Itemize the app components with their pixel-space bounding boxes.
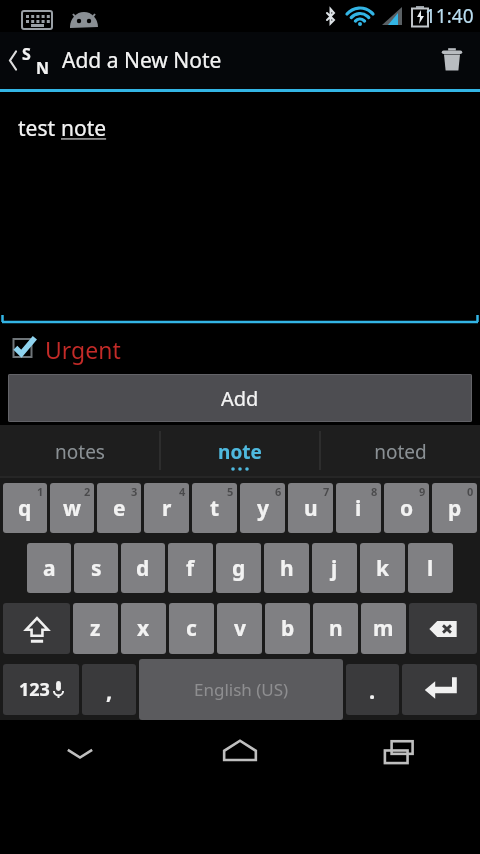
button[interactable]: s — [74, 543, 118, 593]
staticText: , — [106, 675, 113, 705]
staticText: x — [137, 614, 150, 643]
button[interactable]: y — [240, 483, 285, 533]
staticText: note — [218, 439, 262, 465]
staticText: h — [280, 554, 294, 583]
button[interactable]: a — [27, 543, 71, 593]
staticText: t — [210, 494, 220, 523]
staticText: 7 — [323, 484, 330, 499]
staticText: u — [304, 494, 318, 523]
button[interactable]: S — [0, 32, 480, 89]
staticText: 11:40 — [425, 3, 474, 29]
button[interactable]: Urgent — [0, 327, 480, 371]
button[interactable]: i — [336, 483, 381, 533]
button[interactable]: v — [217, 603, 262, 654]
button[interactable]: n — [313, 603, 358, 654]
staticText: Add a New Note — [62, 46, 222, 75]
button[interactable]: j — [312, 543, 357, 593]
button[interactable]: h — [264, 543, 309, 593]
button[interactable]: Home — [160, 720, 320, 786]
button[interactable]: . — [346, 664, 399, 715]
staticText: N — [36, 57, 50, 79]
staticText: v — [234, 614, 246, 643]
staticText: q — [18, 494, 32, 523]
button[interactable]: g — [216, 543, 261, 593]
button[interactable]: Enter — [402, 664, 477, 715]
button[interactable]: l — [408, 543, 453, 593]
staticText: r — [162, 494, 172, 523]
button[interactable]: o — [384, 483, 429, 533]
staticText: i — [355, 494, 362, 523]
staticText: S — [22, 43, 31, 65]
staticText: w — [63, 494, 81, 523]
button[interactable]: b — [265, 603, 310, 654]
staticText: l — [427, 554, 434, 583]
staticText: m — [373, 614, 394, 643]
button[interactable]: test — [0, 92, 480, 327]
staticText: 123 — [19, 677, 50, 702]
button[interactable]: notes — [0, 425, 160, 478]
staticText: noted — [374, 439, 427, 465]
staticText: e — [113, 494, 126, 523]
button[interactable]: q — [3, 483, 47, 533]
button[interactable]: k — [360, 543, 405, 593]
button[interactable]: note — [160, 425, 320, 478]
staticText: o — [400, 494, 414, 523]
button[interactable]: z — [73, 603, 118, 654]
button[interactable]: English (US) — [139, 659, 343, 720]
button[interactable]: d — [121, 543, 165, 593]
staticText: b — [281, 614, 295, 643]
button[interactable]: Backspace — [409, 603, 477, 654]
staticText: c — [186, 614, 197, 643]
button[interactable]: f — [168, 543, 213, 593]
staticText: 1 — [37, 484, 44, 499]
staticText: 0 — [467, 484, 474, 499]
button[interactable]: Recent apps — [320, 720, 480, 786]
staticText: g — [232, 554, 246, 583]
button[interactable]: m — [361, 603, 406, 654]
staticText: 8 — [371, 484, 378, 499]
staticText: 3 — [131, 484, 138, 499]
button[interactable]: u — [288, 483, 333, 533]
staticText: z — [90, 614, 101, 643]
button[interactable]: x — [121, 603, 166, 654]
staticText: note — [61, 114, 107, 143]
button[interactable]: Shift — [3, 603, 70, 654]
staticText: 6 — [275, 484, 282, 499]
staticText: Add — [221, 385, 259, 412]
staticText: 4 — [179, 484, 186, 499]
button[interactable]: e — [97, 483, 141, 533]
button[interactable]: r — [144, 483, 189, 533]
staticText: a — [43, 554, 56, 583]
button[interactable]: p — [432, 483, 477, 533]
button[interactable]: c — [169, 603, 214, 654]
button[interactable]: , — [82, 664, 136, 715]
staticText: Urgent — [45, 334, 121, 365]
staticText: test — [18, 114, 61, 143]
staticText: 2 — [84, 484, 91, 499]
staticText: n — [329, 614, 343, 643]
staticText: j — [331, 554, 338, 583]
button[interactable]: t — [192, 483, 237, 533]
staticText: s — [91, 554, 102, 583]
button[interactable]: noted — [320, 425, 480, 478]
staticText: 5 — [227, 484, 234, 499]
button[interactable]: Delete note — [424, 32, 480, 89]
button[interactable]: w — [50, 483, 94, 533]
staticText: notes — [55, 439, 105, 465]
button[interactable]: Numbers and symbols — [3, 664, 79, 715]
button[interactable]: Hide keyboard — [0, 720, 160, 786]
staticText: English (US) — [194, 678, 289, 701]
staticText: . — [369, 675, 376, 705]
staticText: p — [448, 494, 462, 523]
staticText: k — [376, 554, 390, 583]
staticText: f — [186, 554, 195, 583]
staticText: y — [257, 494, 269, 523]
staticText: d — [136, 554, 150, 583]
button[interactable]: Add — [8, 374, 472, 422]
staticText: 9 — [419, 484, 426, 499]
